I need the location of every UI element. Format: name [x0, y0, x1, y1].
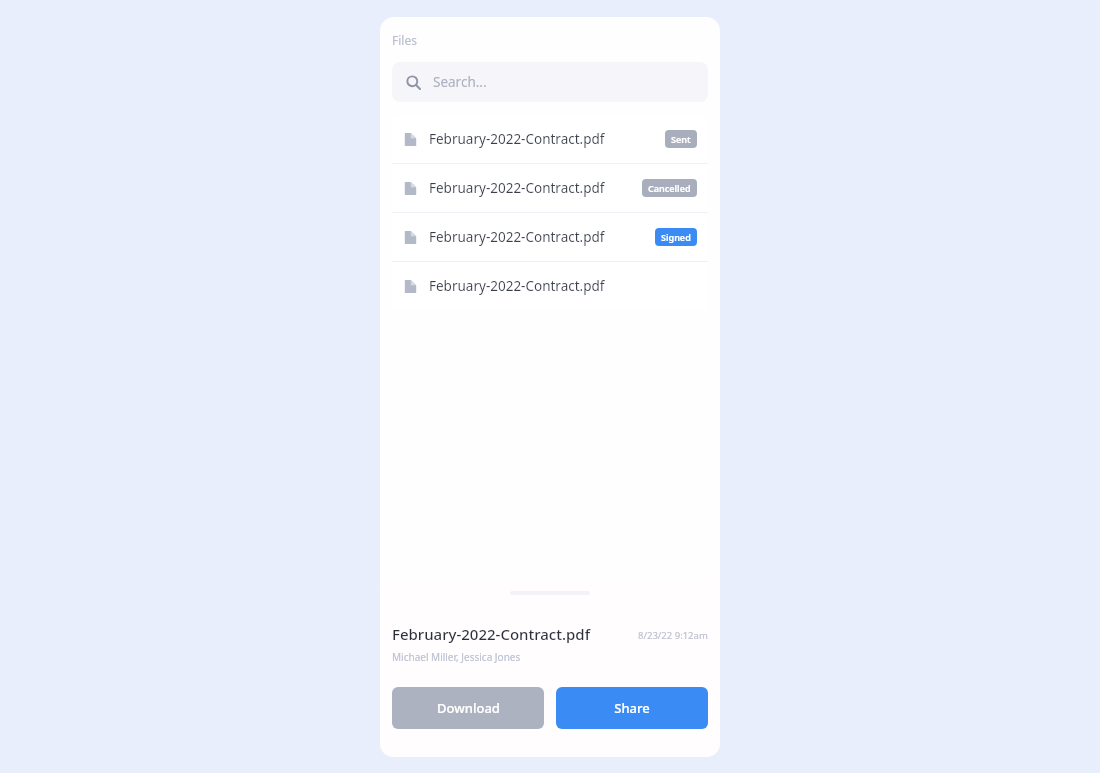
staticText: February-2022-Contract.pdf [392, 624, 590, 644]
button[interactable]: Search... [392, 62, 708, 102]
staticText: Files [392, 32, 417, 48]
staticText: Download [437, 699, 500, 717]
staticText: 8/23/22 9:12am [638, 629, 708, 642]
staticText: Sent [671, 133, 691, 145]
button[interactable]: Share [556, 687, 708, 729]
staticText: February-2022-Contract.pdf [429, 179, 605, 197]
staticText: February-2022-Contract.pdf [429, 130, 605, 148]
staticText: Cancelled [648, 182, 691, 194]
staticText: Michael Miller, Jessica Jones [392, 650, 521, 664]
button[interactable]: February-2022-Contract.pdf [392, 262, 708, 310]
button[interactable]: February-2022-Contract.pdf [392, 115, 708, 164]
button[interactable]: February-2022-Contract.pdf [392, 213, 708, 262]
staticText: Search... [433, 73, 487, 91]
staticText: Share [614, 699, 650, 717]
button[interactable]: February-2022-Contract.pdf [392, 164, 708, 213]
staticText: Signed [661, 231, 691, 243]
staticText: February-2022-Contract.pdf [429, 228, 605, 246]
staticText: February-2022-Contract.pdf [429, 277, 605, 295]
button[interactable]: Download [392, 687, 544, 729]
